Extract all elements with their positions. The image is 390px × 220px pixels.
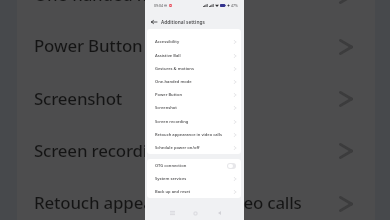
staticText: OTG connection bbox=[155, 163, 227, 169]
staticText: Screen recording bbox=[155, 119, 234, 125]
staticText: Schedule power on/off bbox=[155, 145, 234, 151]
button[interactable]: Back bbox=[148, 16, 159, 27]
staticText: One-handed mode bbox=[34, 0, 183, 6]
staticText: Back up and reset bbox=[155, 189, 234, 195]
staticText: Power Button bbox=[34, 34, 143, 57]
button[interactable]: Recent apps bbox=[166, 207, 178, 219]
staticText: Screen recording bbox=[34, 139, 168, 162]
button[interactable]: Accessibility bbox=[147, 35, 241, 48]
button[interactable]: One-handed mode bbox=[147, 75, 241, 88]
staticText: Screenshot bbox=[155, 105, 234, 111]
button[interactable]: Back bbox=[213, 207, 225, 219]
button[interactable]: Gestures & motions bbox=[147, 62, 241, 75]
staticText: Retouch appearance in video calls bbox=[34, 191, 302, 214]
button[interactable]: Home bbox=[189, 207, 201, 219]
staticText: Retouch appearance in video calls bbox=[155, 132, 234, 138]
button[interactable]: Screen recording bbox=[147, 115, 241, 128]
button[interactable]: OTG connection bbox=[147, 159, 241, 172]
staticText: 09:04 bbox=[154, 3, 163, 8]
staticText: System services bbox=[155, 176, 234, 182]
staticText: Assistive Ball bbox=[155, 53, 234, 59]
button[interactable]: Screenshot bbox=[147, 101, 241, 114]
button[interactable]: System services bbox=[147, 172, 241, 185]
button[interactable]: Schedule power on/off bbox=[147, 141, 241, 154]
staticText: One-handed mode bbox=[155, 79, 234, 85]
staticText: Screenshot bbox=[34, 87, 123, 110]
staticText: Power Button bbox=[155, 92, 234, 98]
staticText: Additional settings bbox=[161, 19, 205, 25]
button[interactable]: Retouch appearance in video calls bbox=[147, 128, 241, 141]
staticText: Gestures & motions bbox=[155, 66, 234, 72]
button[interactable]: Power Button bbox=[147, 88, 241, 101]
staticText: Accessibility bbox=[155, 39, 234, 45]
button[interactable]: Back up and reset bbox=[147, 185, 241, 198]
button[interactable]: Assistive Ball bbox=[147, 49, 241, 62]
staticText: 47% bbox=[231, 3, 238, 8]
